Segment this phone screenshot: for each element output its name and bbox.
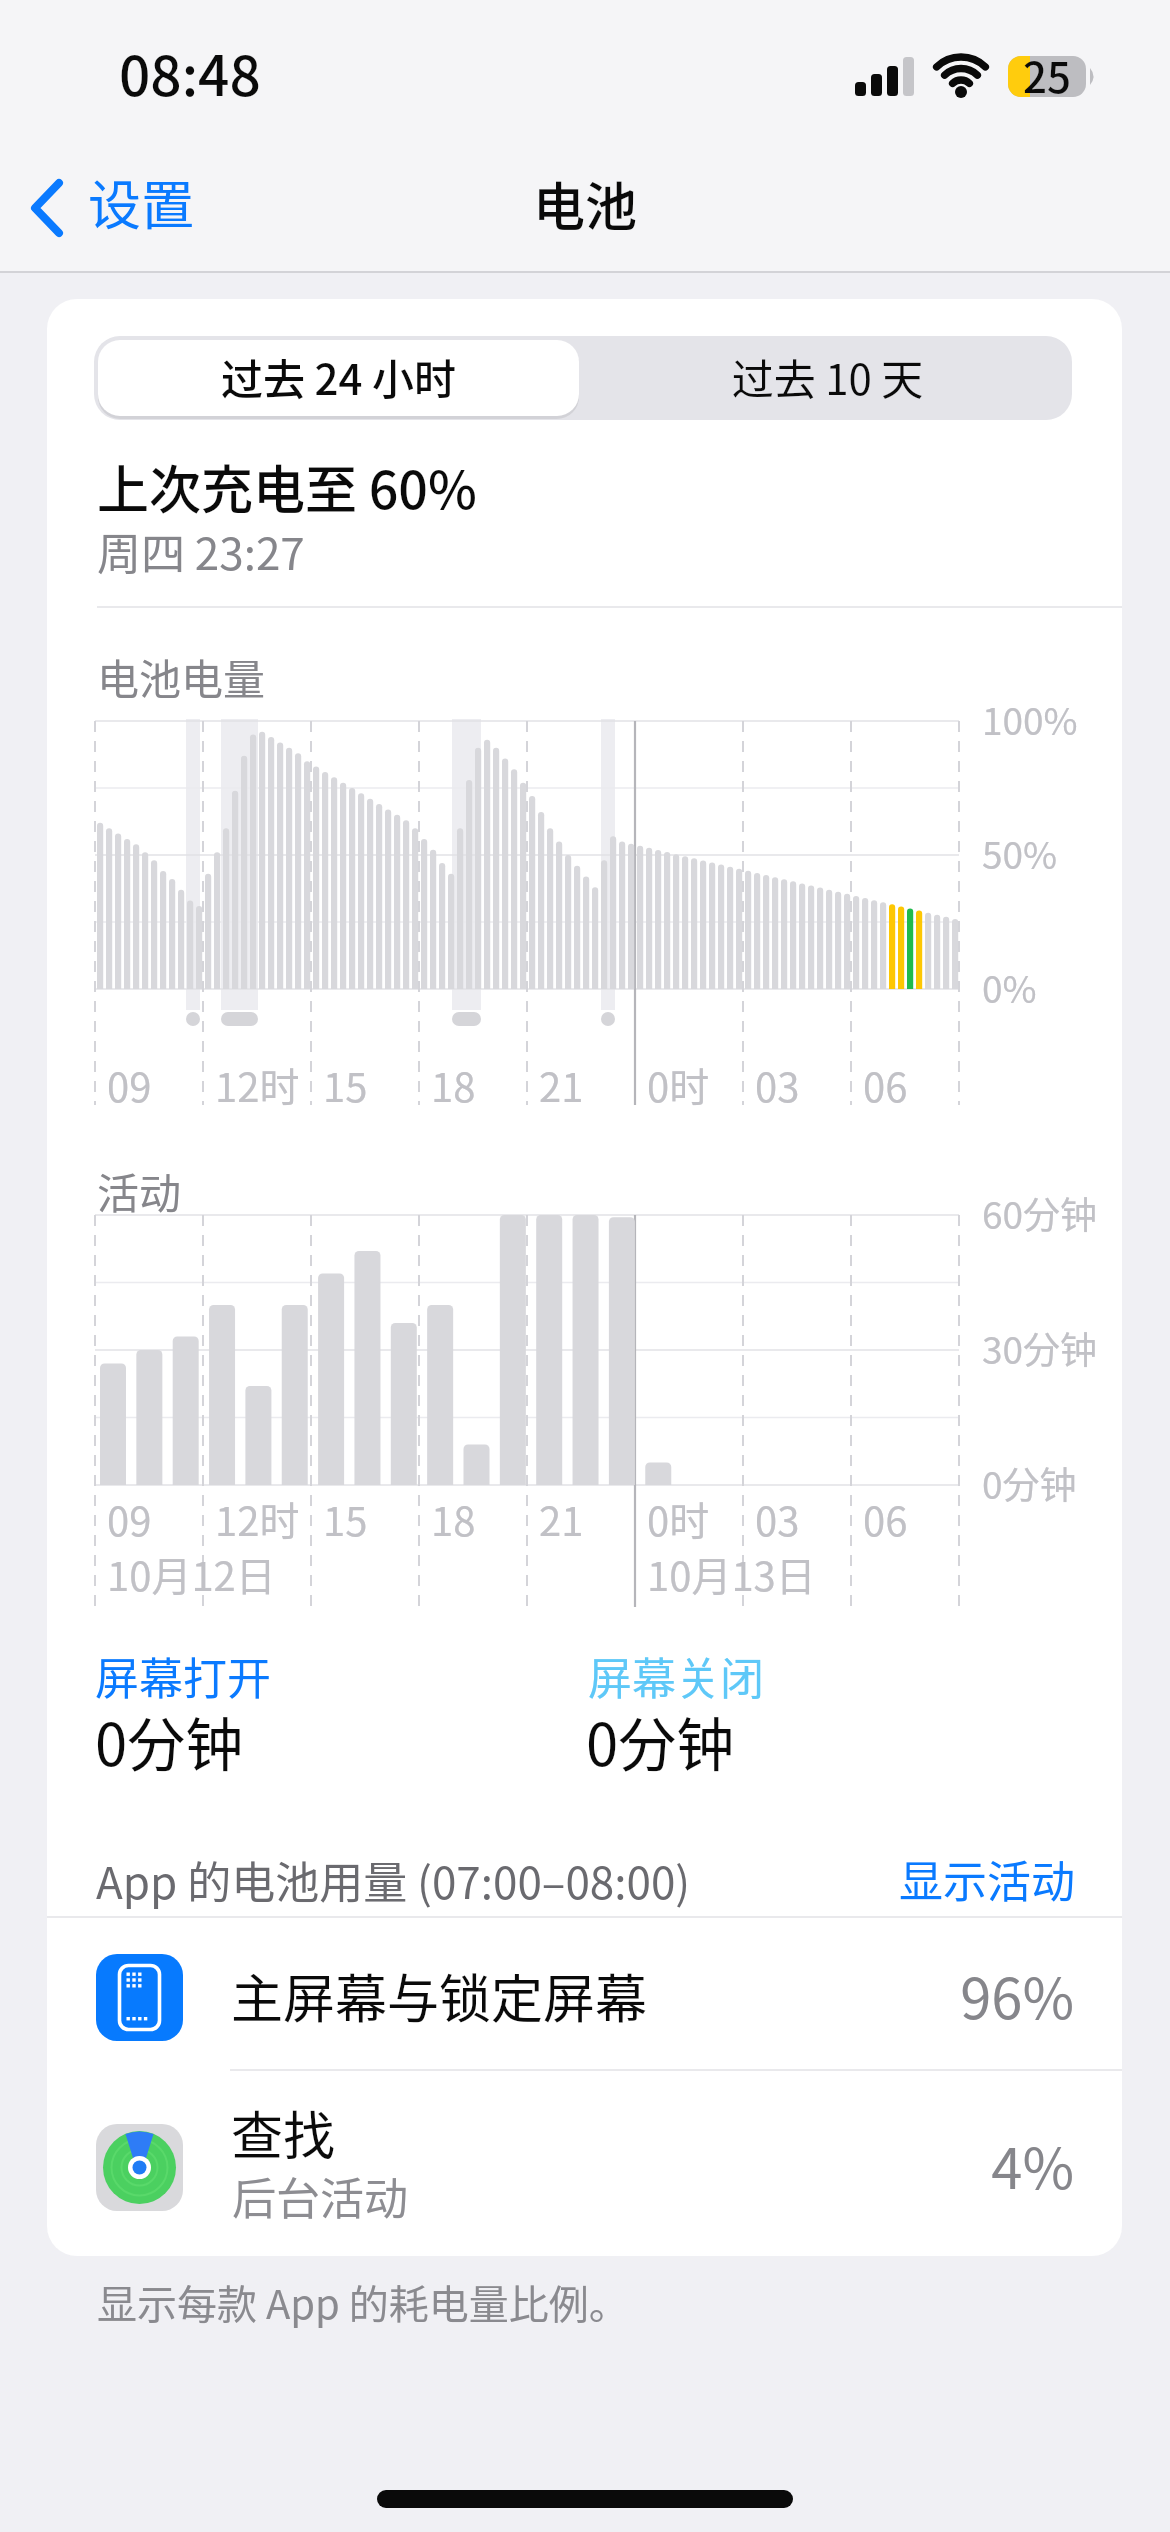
staticText: 0时: [647, 1490, 710, 1548]
staticText: 96%: [674, 1954, 1074, 2035]
staticText: 上次充电至 60%: [97, 449, 477, 524]
staticText: 0%: [982, 960, 1037, 1014]
staticText: 21: [539, 1056, 584, 1114]
staticText: 查找: [231, 2095, 336, 2170]
staticText: 12时: [215, 1056, 300, 1114]
staticText: 10月12日: [107, 1545, 276, 1603]
staticText: 06: [863, 1056, 908, 1114]
staticText: 60分钟: [982, 1186, 1098, 1240]
staticText: 06: [863, 1490, 908, 1548]
staticText: 18: [431, 1490, 476, 1548]
button[interactable]: [20, 160, 220, 255]
staticText: 12时: [215, 1490, 300, 1548]
staticText: 09: [107, 1056, 152, 1114]
staticText: 50%: [982, 826, 1058, 880]
staticText: 4%: [674, 2124, 1074, 2205]
staticText: 过去 10 天: [583, 346, 1072, 407]
staticText: 21: [539, 1490, 584, 1548]
staticText: 18: [431, 1056, 476, 1114]
staticText: 0分钟: [982, 1456, 1077, 1510]
staticText: 活动: [97, 1160, 182, 1221]
button[interactable]: [874, 1835, 1084, 1915]
button[interactable]: [47, 1918, 1122, 2070]
staticText: 08:48: [119, 32, 261, 112]
button[interactable]: [47, 2071, 1122, 2256]
staticText: 0分钟: [95, 1699, 244, 1783]
staticText: 0分钟: [586, 1699, 735, 1783]
staticText: 过去 24 小时: [94, 346, 583, 407]
staticText: 100%: [982, 692, 1078, 746]
staticText: App 的电池用量 (07:00–08:00): [96, 1848, 691, 1912]
staticText: 周四 23:27: [97, 519, 305, 583]
staticText: 后台活动: [232, 2164, 408, 2228]
staticText: 09: [107, 1490, 152, 1548]
staticText: 0时: [647, 1056, 710, 1114]
staticText: 主屏幕与锁定屏幕: [231, 1958, 648, 2033]
button[interactable]: [94, 336, 583, 420]
staticText: 03: [755, 1056, 800, 1114]
staticText: 屏幕关闭: [588, 1644, 764, 1708]
staticText: 15: [323, 1056, 368, 1114]
staticText: 屏幕打开: [95, 1644, 271, 1708]
staticText: 显示每款 App 的耗电量比例。: [97, 2273, 629, 2331]
staticText: 电池: [0, 166, 1170, 241]
staticText: 03: [755, 1490, 800, 1548]
staticText: 电池电量: [97, 646, 266, 707]
staticText: 15: [323, 1490, 368, 1548]
staticText: 25: [1008, 44, 1086, 105]
staticText: 30分钟: [982, 1321, 1098, 1375]
staticText: 10月13日: [647, 1545, 816, 1603]
staticText: 显示活动: [675, 1847, 1075, 1911]
button[interactable]: [583, 336, 1072, 420]
staticText: 设置: [88, 164, 194, 241]
